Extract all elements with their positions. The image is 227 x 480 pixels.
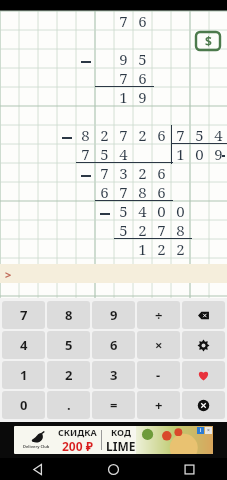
button[interactable]: 0 [2, 391, 45, 419]
staticText: 6 [138, 68, 147, 87]
staticText: 2 [138, 125, 147, 144]
staticText: 4 [20, 336, 28, 354]
button[interactable]: Home [75, 458, 151, 480]
button[interactable]: 1 [2, 361, 45, 389]
button[interactable]: Recents [151, 458, 227, 480]
staticText: 3 [110, 366, 118, 384]
button[interactable]: 5 [47, 331, 90, 359]
button[interactable]: 3 [92, 361, 135, 389]
staticText: 2 [138, 163, 147, 182]
staticText: 7 [119, 11, 128, 30]
staticText: 2 [65, 366, 73, 384]
button[interactable]: Favorites [182, 361, 225, 389]
staticText: 9 [138, 87, 147, 106]
staticText: 1 [176, 144, 185, 163]
staticText: + [155, 396, 163, 414]
staticText: $ [205, 33, 212, 49]
staticText: i [200, 427, 202, 434]
staticText: СКИДКА [58, 426, 97, 438]
staticText: Delivery Club [23, 444, 50, 449]
button[interactable]: 2 [47, 361, 90, 389]
button[interactable]: - [137, 361, 180, 389]
staticText: 0 [195, 144, 204, 163]
staticText: 7 [100, 163, 109, 182]
staticText: > [5, 267, 12, 279]
staticText: 5 [119, 201, 128, 220]
button[interactable]: Settings [182, 331, 225, 359]
staticText: 6 [157, 163, 166, 182]
staticText: 7 [81, 144, 90, 163]
staticText: 1 [119, 87, 128, 106]
staticText: - [156, 366, 161, 384]
staticText: 7 [119, 182, 128, 201]
staticText: КОД [111, 426, 131, 438]
staticText: 8 [176, 220, 185, 239]
button[interactable]: Delivery Club [14, 426, 213, 454]
button[interactable]: = [92, 391, 135, 419]
staticText: 7 [157, 220, 166, 239]
button[interactable]: 7 [2, 301, 45, 329]
button[interactable]: 4 [2, 331, 45, 359]
staticText: 2 [138, 220, 147, 239]
staticText: 7 [119, 125, 128, 144]
staticText: 9 [119, 49, 128, 68]
staticText: 7 [20, 306, 28, 324]
staticText: ÷ [155, 306, 163, 324]
button[interactable]: Back [0, 458, 75, 480]
staticText: 8 [65, 306, 73, 324]
staticText: × [155, 336, 163, 354]
staticText: 2 [176, 239, 185, 258]
button[interactable]: Remove ads [196, 32, 220, 50]
staticText: LIME [106, 438, 136, 454]
button[interactable]: 9 [92, 301, 135, 329]
staticText: 1 [138, 239, 147, 258]
staticText: 0 [157, 201, 166, 220]
staticText: 9 [214, 144, 223, 163]
staticText: 5 [195, 125, 204, 144]
staticText: 200 ₽ [62, 438, 93, 454]
staticText: 9 [110, 306, 118, 324]
button[interactable]: 6 [92, 331, 135, 359]
staticText: 7 [176, 125, 185, 144]
staticText: 3 [119, 163, 128, 182]
staticText: 6 [100, 182, 109, 201]
button[interactable]: Clear all [182, 391, 225, 419]
staticText: 2 [157, 239, 166, 258]
button[interactable]: × [137, 331, 180, 359]
staticText: 6 [157, 182, 166, 201]
button[interactable]: ÷ [137, 301, 180, 329]
button[interactable]: . [47, 391, 90, 419]
staticText: . [67, 396, 71, 414]
staticText: 4 [214, 125, 223, 144]
staticText: 8 [81, 125, 90, 144]
staticText: 6 [110, 336, 118, 354]
staticText: 0 [20, 396, 28, 414]
staticText: 5 [65, 336, 73, 354]
button[interactable]: + [137, 391, 180, 419]
staticText: 4 [138, 201, 147, 220]
staticText: 1 [20, 366, 28, 384]
staticText: = [110, 396, 118, 414]
button[interactable]: 8 [47, 301, 90, 329]
staticText: 5 [119, 220, 128, 239]
staticText: 2 [100, 125, 109, 144]
staticText: 0 [176, 201, 185, 220]
button[interactable]: Backspace [182, 301, 225, 329]
staticText: 6 [157, 125, 166, 144]
staticText: 4 [119, 144, 128, 163]
button[interactable]: > [2, 267, 14, 279]
staticText: 5 [138, 49, 147, 68]
staticText: 8 [138, 182, 147, 201]
staticText: 5 [100, 144, 109, 163]
staticText: × [207, 427, 210, 434]
staticText: 6 [138, 11, 147, 30]
staticText: 7 [119, 68, 128, 87]
